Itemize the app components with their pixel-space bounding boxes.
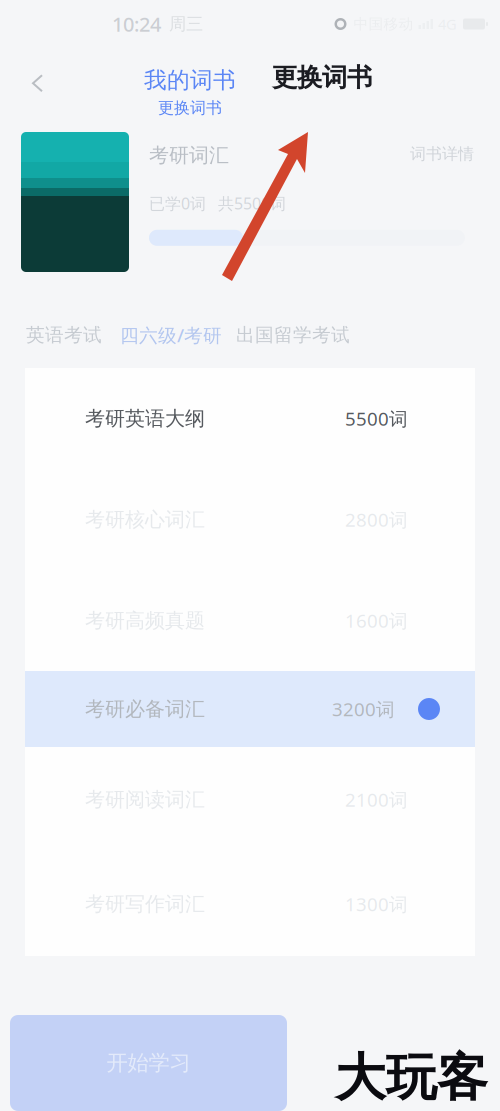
- button[interactable]: 考研英语大纲: [25, 368, 475, 469]
- button[interactable]: 英语考试: [26, 317, 102, 353]
- staticText: 5500词: [345, 406, 408, 431]
- staticText: 考研高频真题: [85, 608, 205, 633]
- staticText: 大玩客: [335, 1047, 488, 1109]
- staticText: 考研阅读词汇: [85, 787, 205, 812]
- button[interactable]: 开始学习: [10, 1015, 287, 1111]
- staticText: 4G: [438, 14, 457, 34]
- staticText: 英语考试: [26, 323, 102, 346]
- button[interactable]: 考研必备词汇: [25, 671, 475, 747]
- staticText: 1600词: [345, 608, 408, 633]
- staticText: 已学0词: [149, 193, 206, 214]
- staticText: 共5500词: [218, 193, 286, 214]
- staticText: 更换词书: [158, 98, 222, 118]
- staticText: 开始学习: [106, 1050, 190, 1076]
- staticText: 考研必备词汇: [85, 697, 205, 721]
- button[interactable]: 词书详情: [410, 144, 474, 164]
- staticText: 中国移动: [353, 15, 413, 33]
- staticText: 考研词汇: [149, 143, 229, 168]
- staticText: 考研核心词汇: [85, 507, 205, 532]
- staticText: 10:24: [112, 11, 161, 37]
- staticText: 出国留学考试: [236, 323, 350, 346]
- staticText: 1300词: [345, 892, 408, 916]
- staticText: 考研写作词汇: [85, 892, 205, 916]
- staticText: 词书详情: [410, 144, 474, 164]
- button[interactable]: 四六级/考研: [120, 317, 222, 353]
- staticText: 四六级/考研: [120, 323, 222, 347]
- staticText: 考研英语大纲: [85, 406, 205, 431]
- staticText: 周三: [169, 13, 203, 35]
- staticText: 3200词: [332, 697, 395, 721]
- button[interactable]: 出国留学考试: [236, 317, 350, 353]
- staticText: 2800词: [345, 507, 408, 532]
- staticText: 更换词书: [272, 62, 372, 93]
- button[interactable]: Back: [14, 60, 60, 106]
- staticText: 我的词书: [144, 66, 236, 94]
- staticText: 2100词: [345, 787, 408, 812]
